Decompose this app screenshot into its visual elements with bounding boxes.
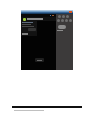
button[interactable]: App icon [23,18,26,21]
button[interactable] [65,19,68,22]
button[interactable] [69,19,72,22]
button[interactable] [58,15,61,18]
button[interactable] [57,19,60,22]
button[interactable] [61,19,64,22]
button[interactable] [66,15,69,18]
button[interactable] [58,25,66,29]
button[interactable] [62,15,65,18]
button[interactable] [35,58,44,62]
